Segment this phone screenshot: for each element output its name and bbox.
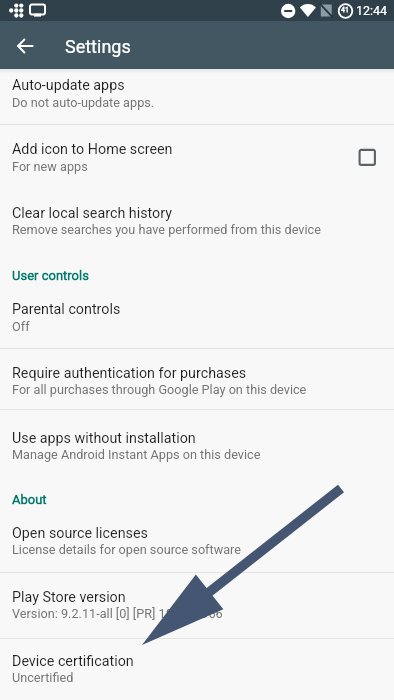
button[interactable]	[0, 510, 394, 572]
staticText: Uncertified	[12, 670, 74, 685]
button[interactable]	[0, 69, 394, 124]
staticText: Use apps without installation	[12, 430, 196, 447]
staticText: Open source licenses	[12, 525, 148, 542]
staticText: Device certification	[12, 653, 134, 670]
staticText: Parental controls	[12, 301, 121, 318]
staticText: Version: 9.2.11-all [0] [PR] 185283966	[12, 606, 223, 621]
staticText: Clear local search history	[12, 205, 172, 222]
staticText: Manage Android Instant Apps on this devi…	[12, 447, 261, 462]
staticText: License details for open source software	[12, 542, 242, 557]
staticText: Add icon to Home screen	[12, 141, 173, 158]
staticText: For new apps	[12, 159, 88, 174]
button[interactable]	[0, 410, 394, 472]
staticText: 41	[341, 6, 349, 14]
staticText: Off	[12, 319, 30, 334]
staticText: About	[12, 492, 47, 507]
button[interactable]: Add icon to Home screen checkbox	[348, 138, 384, 174]
button[interactable]	[0, 188, 394, 248]
button[interactable]	[0, 573, 394, 638]
button[interactable]	[0, 286, 394, 348]
staticText: Auto-update apps	[12, 77, 125, 94]
staticText: Require authentication for purchases	[12, 365, 247, 382]
button[interactable]	[0, 639, 394, 700]
button[interactable]	[0, 125, 394, 187]
staticText: Play Store version	[12, 589, 126, 606]
button[interactable]: Back	[3, 22, 45, 64]
staticText: Settings	[65, 36, 131, 57]
staticText: For all purchases through Google Play on…	[12, 382, 307, 397]
staticText: 12:44	[356, 3, 388, 18]
button[interactable]	[0, 349, 394, 409]
staticText: User controls	[12, 268, 89, 283]
staticText: Remove searches you have performed from …	[12, 222, 321, 237]
staticText: Do not auto-update apps.	[12, 95, 155, 110]
